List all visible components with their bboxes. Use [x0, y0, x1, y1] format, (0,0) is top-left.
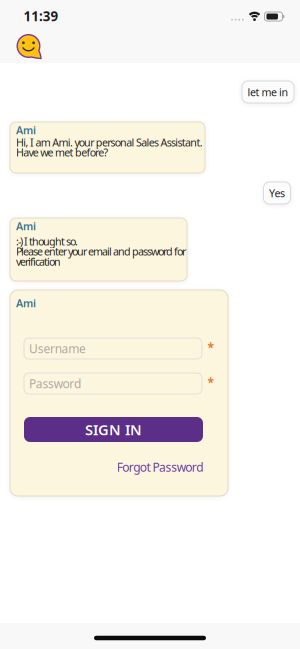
button[interactable]: let me in: [242, 81, 294, 103]
staticText: 11:39: [24, 7, 58, 25]
staticText: Ami: [16, 296, 36, 310]
staticText: *: [207, 374, 214, 390]
staticText: Hi, I am Ami. your personal Sales Assist…: [16, 135, 203, 149]
staticText: Yes: [269, 186, 285, 200]
staticText: verification: [16, 254, 61, 269]
staticText: Have we met before?: [16, 145, 108, 159]
staticText: let me in: [247, 85, 288, 99]
button[interactable]: Yes: [263, 182, 290, 204]
staticText: Ami: [16, 219, 36, 233]
staticText: Username: [29, 340, 86, 356]
staticText: Forgot Password: [117, 459, 203, 475]
staticText: Please enter your email and password for: [16, 244, 186, 258]
button[interactable]: Forgot Password: [117, 459, 203, 475]
staticText: SIGN IN: [85, 420, 142, 439]
button[interactable]: SIGN IN: [24, 417, 203, 442]
staticText: Ami: [16, 123, 36, 137]
staticText: *: [207, 339, 214, 355]
staticText: :-) I thought so.: [16, 234, 78, 248]
staticText: Password: [29, 375, 81, 391]
